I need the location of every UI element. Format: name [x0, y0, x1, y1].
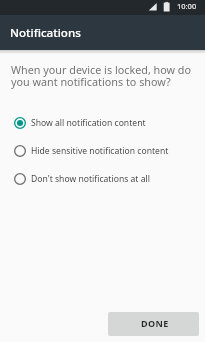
other: Battery full — [163, 1, 171, 13]
staticText: Don't show notifications at all — [31, 173, 150, 185]
staticText: When your device is locked, how do you w… — [11, 62, 193, 89]
button[interactable]: Show all notification content — [0, 109, 205, 137]
other: Mobile signal strength — [148, 2, 157, 11]
button[interactable]: DONE — [108, 312, 199, 336]
staticText: 10:00 — [177, 1, 197, 11]
staticText: Notifications — [10, 25, 81, 41]
staticText: Hide sensitive notification content — [31, 145, 169, 157]
button[interactable]: Hide sensitive notification content — [0, 137, 205, 165]
staticText: DONE — [141, 317, 169, 329]
button[interactable]: Don't show notifications at all — [0, 165, 205, 193]
staticText: Show all notification content — [31, 117, 146, 129]
